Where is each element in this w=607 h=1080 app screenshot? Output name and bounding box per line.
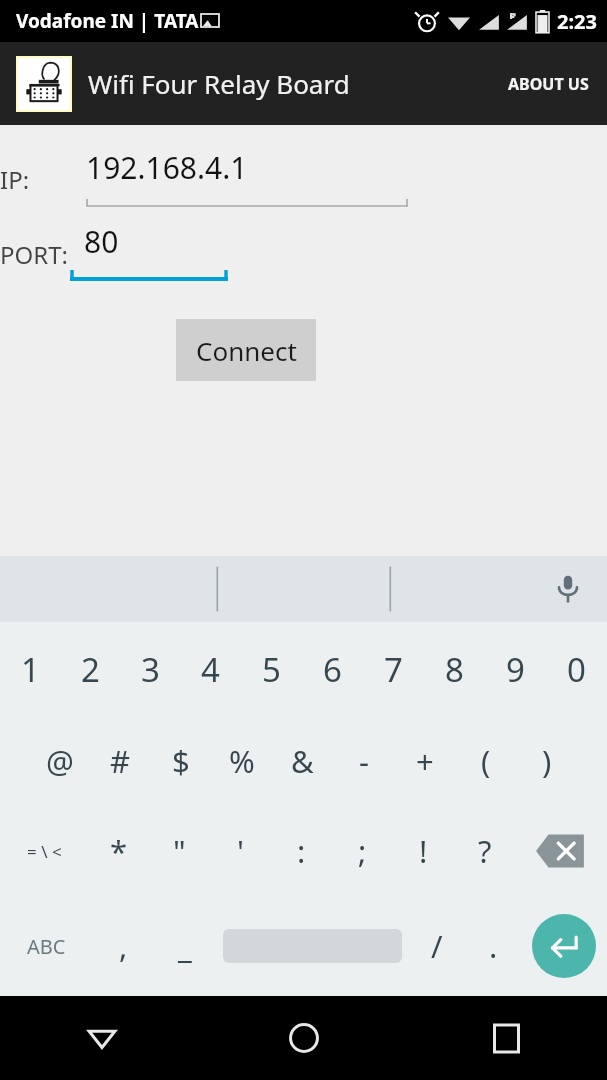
staticText: ? xyxy=(478,830,492,872)
button[interactable]: " xyxy=(149,806,210,896)
staticText: . xyxy=(489,925,498,967)
staticText: : xyxy=(297,830,306,872)
staticText: # xyxy=(110,740,131,782)
button[interactable]: ? xyxy=(454,806,515,896)
staticText: $ xyxy=(172,740,190,782)
button[interactable]: _ xyxy=(154,896,216,996)
button[interactable]: 3 xyxy=(120,622,180,716)
button[interactable]: $ xyxy=(150,716,211,806)
button[interactable]: ( xyxy=(455,716,516,806)
staticText: - xyxy=(359,740,369,782)
staticText: , xyxy=(119,925,128,967)
staticText: 2 xyxy=(81,647,100,692)
staticText: 3 xyxy=(141,647,160,692)
button[interactable]: . xyxy=(465,896,521,996)
staticText: 9 xyxy=(506,647,525,692)
button[interactable]: Back xyxy=(0,996,203,1080)
staticText: ' xyxy=(237,830,244,872)
staticText: = \ < xyxy=(27,840,62,863)
button[interactable]: / xyxy=(409,896,465,996)
button[interactable]: Space xyxy=(216,896,409,996)
staticText: % xyxy=(229,740,255,782)
staticText: Vodafone IN | TATA xyxy=(16,8,199,34)
staticText: ( xyxy=(481,740,491,782)
button[interactable]: = \ < xyxy=(0,806,88,896)
staticText: ABC xyxy=(27,933,66,960)
button[interactable]: 0 xyxy=(546,622,607,716)
staticText: 4 xyxy=(201,647,220,692)
button[interactable]: ' xyxy=(210,806,271,896)
button[interactable]: 4 xyxy=(180,622,241,716)
staticText: ) xyxy=(542,740,552,782)
button[interactable]: Voice input xyxy=(547,568,589,610)
button[interactable]: - xyxy=(333,716,394,806)
button[interactable]: 8 xyxy=(424,622,485,716)
staticText: ! xyxy=(419,830,428,872)
staticText: ; xyxy=(358,830,367,872)
button[interactable]: # xyxy=(90,716,150,806)
button[interactable]: ; xyxy=(332,806,393,896)
button[interactable]: % xyxy=(211,716,272,806)
button[interactable]: 80 xyxy=(70,221,228,262)
button[interactable]: ! xyxy=(393,806,454,896)
button[interactable]: Recent apps xyxy=(405,996,607,1080)
button[interactable]: @ xyxy=(30,716,90,806)
staticText: @ xyxy=(46,740,74,782)
staticText: 192.168.4.1 xyxy=(86,147,248,188)
button[interactable]: + xyxy=(394,716,455,806)
button[interactable]: 7 xyxy=(363,622,424,716)
button[interactable]: 9 xyxy=(485,622,546,716)
button[interactable]: : xyxy=(271,806,332,896)
button[interactable]: Connect xyxy=(176,319,316,381)
staticText: 80 xyxy=(84,221,119,262)
staticText: 2:23 xyxy=(557,8,597,35)
staticText: 0 xyxy=(567,647,586,692)
staticText: Wifi Four Relay Board xyxy=(88,66,494,101)
button[interactable]: Home xyxy=(203,996,405,1080)
button[interactable]: 5 xyxy=(241,622,302,716)
staticText: 1 xyxy=(21,647,40,692)
button[interactable]: Backspace xyxy=(515,806,607,896)
button[interactable]: Enter xyxy=(521,896,607,996)
button[interactable]: ) xyxy=(516,716,577,806)
button[interactable]: 2 xyxy=(60,622,120,716)
staticText: 5 xyxy=(262,647,281,692)
staticText: _ xyxy=(178,925,192,967)
staticText: 8 xyxy=(445,647,464,692)
button[interactable]: & xyxy=(272,716,333,806)
staticText: & xyxy=(291,740,314,782)
staticText: IP: xyxy=(0,163,30,196)
button[interactable]: ABC xyxy=(0,896,92,996)
button[interactable]: 6 xyxy=(302,622,363,716)
button[interactable]: 1 xyxy=(0,622,60,716)
staticText: ABOUT US xyxy=(508,73,589,95)
staticText: * xyxy=(110,830,128,872)
button[interactable]: * xyxy=(88,806,149,896)
staticText: " xyxy=(173,830,186,872)
button[interactable]: ABOUT US xyxy=(494,63,603,105)
button[interactable]: , xyxy=(92,896,154,996)
staticText: 6 xyxy=(323,647,342,692)
staticText: Connect xyxy=(196,333,297,368)
staticText: / xyxy=(431,925,443,967)
staticText: PORT: xyxy=(0,238,68,271)
staticText: + xyxy=(416,740,434,782)
button[interactable]: 192.168.4.1 xyxy=(86,147,408,188)
staticText: 7 xyxy=(384,647,403,692)
